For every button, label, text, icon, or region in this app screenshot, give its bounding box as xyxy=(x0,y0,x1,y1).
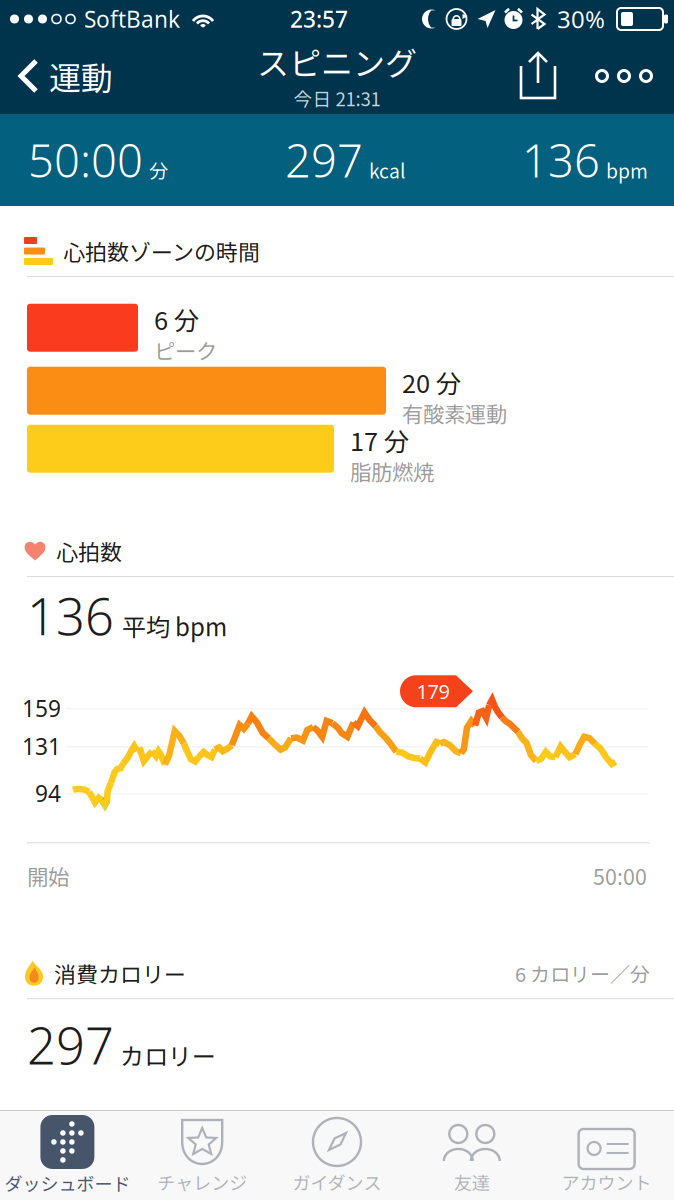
staticText: ガイダンス xyxy=(292,1169,381,1195)
staticText: 159 xyxy=(22,693,61,723)
staticText: 179 xyxy=(416,678,449,705)
staticText: 友達 xyxy=(454,1169,490,1195)
staticText: 136 xyxy=(27,582,114,649)
button[interactable]: 友達 xyxy=(404,1111,539,1200)
staticText: カロリー xyxy=(120,1038,216,1072)
staticText: 50:00 xyxy=(28,130,143,190)
staticText: 136 xyxy=(522,130,600,190)
button[interactable]: Share xyxy=(502,41,574,111)
staticText: 94 xyxy=(35,778,61,808)
staticText: SoftBank xyxy=(84,4,180,34)
staticText: 脂肪燃焼 xyxy=(350,455,434,486)
staticText: 平均 bpm xyxy=(122,608,227,643)
staticText: bpm xyxy=(606,156,648,184)
staticText: チャレンジ xyxy=(157,1169,247,1195)
staticText: 心拍数ゾーンの時間 xyxy=(63,235,260,267)
staticText: 有酸素運動 xyxy=(402,397,507,428)
staticText: 131 xyxy=(22,731,61,761)
staticText: 17 分 xyxy=(350,422,409,458)
staticText: 30% xyxy=(557,3,605,35)
button[interactable]: アカウント xyxy=(539,1111,674,1200)
staticText: kcal xyxy=(369,156,405,184)
button[interactable]: 運動 xyxy=(0,41,125,111)
staticText: 開始 xyxy=(27,860,69,891)
button[interactable]: ダッシュボード xyxy=(0,1111,135,1200)
staticText: 分 xyxy=(149,156,168,184)
staticText: ダッシュボード xyxy=(4,1170,130,1196)
staticText: ピーク xyxy=(154,334,217,365)
staticText: 消費カロリー xyxy=(54,957,186,989)
button[interactable]: ガイダンス xyxy=(270,1111,404,1200)
staticText: 23:57 xyxy=(290,4,348,34)
staticText: 20 分 xyxy=(402,364,461,400)
staticText: 6 分 xyxy=(154,301,199,337)
staticText: 運動 xyxy=(49,53,113,99)
button[interactable]: チャレンジ xyxy=(135,1111,270,1200)
staticText: 心拍数 xyxy=(56,535,122,567)
button[interactable]: More options xyxy=(574,41,674,111)
staticText: スピニング xyxy=(257,38,417,85)
staticText: 今日 21:31 xyxy=(293,85,380,112)
staticText: 297 xyxy=(285,130,363,190)
staticText: 50:00 xyxy=(593,860,647,891)
staticText: 6 カロリー／分 xyxy=(515,959,650,988)
staticText: 297 xyxy=(27,1011,114,1078)
staticText: アカウント xyxy=(562,1169,652,1195)
